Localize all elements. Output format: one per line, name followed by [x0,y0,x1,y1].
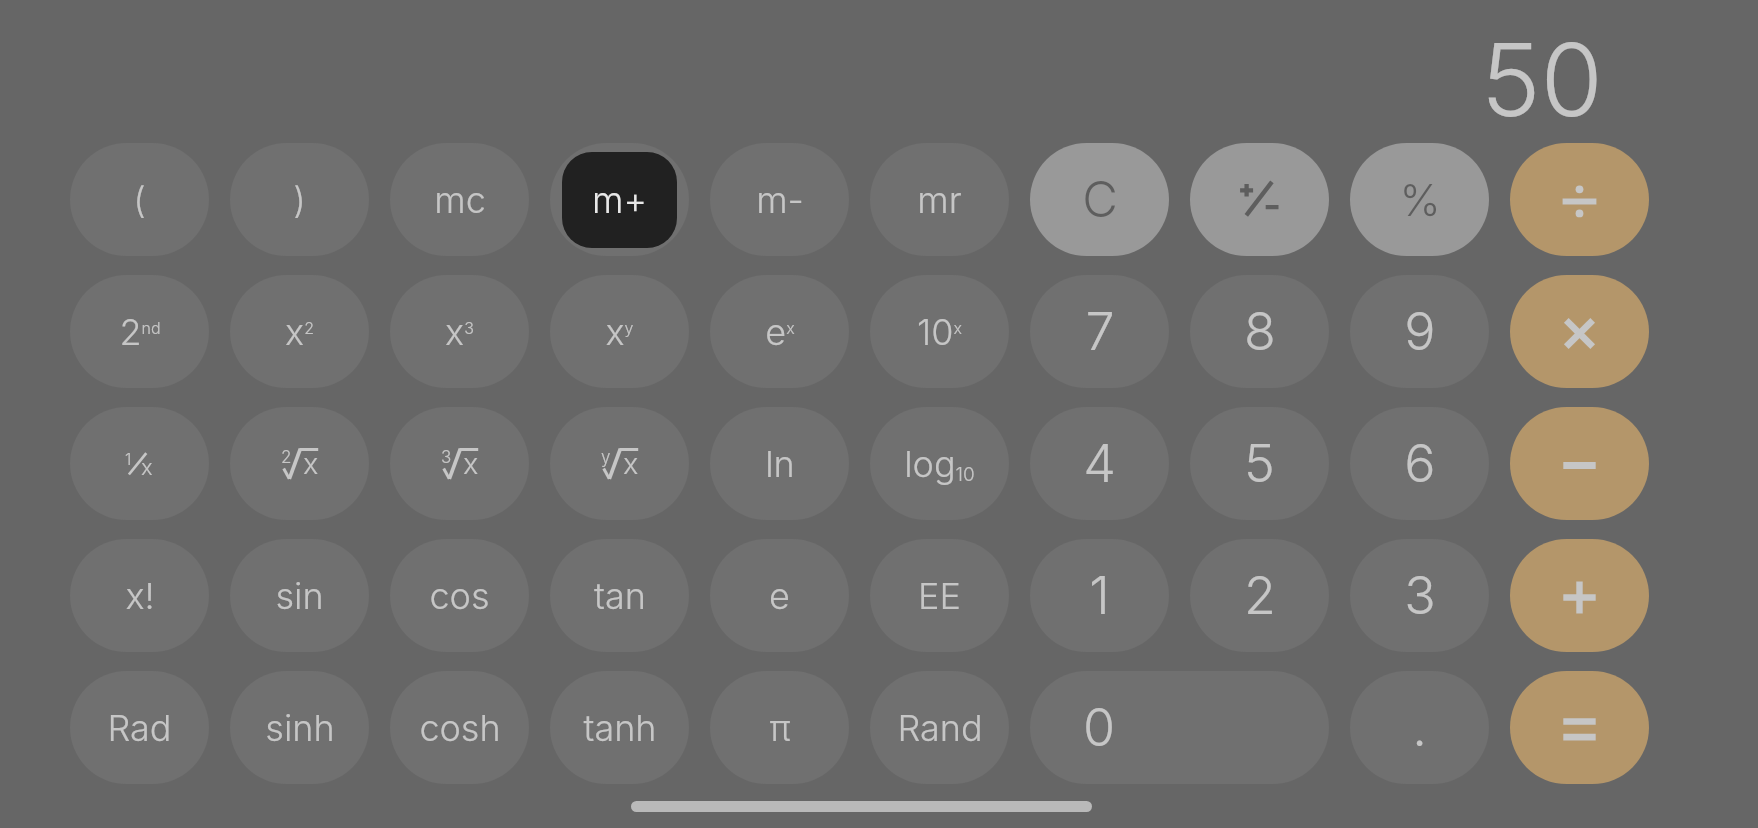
button[interactable]: Add [1510,539,1649,652]
button[interactable]: Close bracket [230,143,369,256]
staticText: Rand [897,706,983,750]
button[interactable]: e [710,539,849,652]
staticText: x [623,446,639,478]
button[interactable]: Open bracket [70,143,209,256]
staticText: 0 [1083,696,1116,759]
staticText: m- [756,178,804,222]
button[interactable]: 6 [1350,407,1489,520]
staticText: π [769,706,791,750]
staticText: 7 [1085,300,1115,363]
button[interactable]: m- [710,143,849,256]
staticText: 2 [1244,564,1276,627]
staticText: y [601,447,611,468]
staticText: 3 [441,447,452,468]
button[interactable]: Decimal point [1350,671,1489,784]
staticText: ex [765,310,795,354]
staticText: e [769,574,790,618]
button[interactable]: Multiply [1510,275,1649,388]
button[interactable]: 10^x [870,275,1009,388]
button[interactable]: 5 [1190,407,1329,520]
staticText: C [1082,170,1118,229]
staticText: x3 [445,310,474,354]
staticText: % [1399,173,1441,226]
button[interactable]: Clear [1030,143,1169,256]
button[interactable]: one over x [70,407,209,520]
staticText: x [141,454,153,476]
button[interactable]: 3 [1350,539,1489,652]
button[interactable]: 7 [1030,275,1169,388]
staticText: 10x [917,310,962,354]
button[interactable]: 9 [1350,275,1489,388]
staticText: sin [275,574,324,618]
button[interactable]: Divide [1510,143,1649,256]
button[interactable]: e^x [710,275,849,388]
staticText: x [303,446,319,478]
staticText: mr [917,178,962,222]
staticText: 5 [1244,432,1275,495]
button[interactable]: sin [230,539,369,652]
button[interactable]: 2 [1190,539,1329,652]
button[interactable]: 0 [1030,671,1329,784]
staticText: ) [293,178,306,222]
button[interactable]: sinh [230,671,369,784]
button[interactable]: Equals [1510,671,1649,784]
button[interactable]: Rand [870,671,1009,784]
button[interactable]: 1 [1030,539,1169,652]
staticText: 3 [1404,564,1436,627]
button[interactable]: mr [870,143,1009,256]
button[interactable]: log10 [870,407,1009,520]
staticText: mc [434,178,486,222]
button[interactable]: 8 [1190,275,1329,388]
staticText: tan [594,574,646,618]
staticText: EE [918,574,961,618]
staticText: 4 [1083,432,1116,495]
staticText: ln [765,442,795,486]
button[interactable]: EE [870,539,1009,652]
button[interactable]: x^2 [230,275,369,388]
button[interactable]: Rad [70,671,209,784]
button[interactable]: cos [390,539,529,652]
button[interactable]: 4 [1030,407,1169,520]
staticText: 8 [1244,300,1276,363]
button[interactable]: 2^nd [70,275,209,388]
staticText: x [463,446,479,478]
button[interactable]: Percent [1350,143,1489,256]
staticText: sinh [265,706,335,750]
staticText: 2 [281,447,292,468]
button[interactable]: cosh [390,671,529,784]
button[interactable]: ln [710,407,849,520]
staticText: . [1412,696,1427,759]
button[interactable]: Plus minus [1190,143,1329,256]
staticText: Rad [107,706,172,750]
button[interactable]: mc [390,143,529,256]
staticText: 50 [1480,18,1603,124]
button[interactable]: tanh [550,671,689,784]
button[interactable]: x! [70,539,209,652]
staticText: tanh [583,706,657,750]
button[interactable]: root y of x [550,407,689,520]
button[interactable]: pi [710,671,849,784]
staticText: 1 [1089,564,1110,627]
button[interactable]: x^y [550,275,689,388]
staticText: 9 [1404,300,1436,363]
button[interactable]: x^3 [390,275,529,388]
staticText: m+ [592,178,647,222]
staticText: 1 [125,449,132,468]
staticText: x! [125,574,155,618]
button[interactable]: root 2 of x [230,407,369,520]
button[interactable]: tan [550,539,689,652]
button[interactable]: Subtract [1510,407,1649,520]
staticText: log10 [904,442,975,486]
staticText: ( [133,178,146,222]
button[interactable]: m+ [550,143,689,256]
staticText: 2nd [119,310,161,354]
button[interactable]: root 3 of x [390,407,529,520]
staticText: x2 [285,310,314,354]
staticText: cos [429,574,490,618]
staticText: 6 [1404,432,1436,495]
staticText: xy [605,310,634,354]
staticText: cosh [419,706,501,750]
